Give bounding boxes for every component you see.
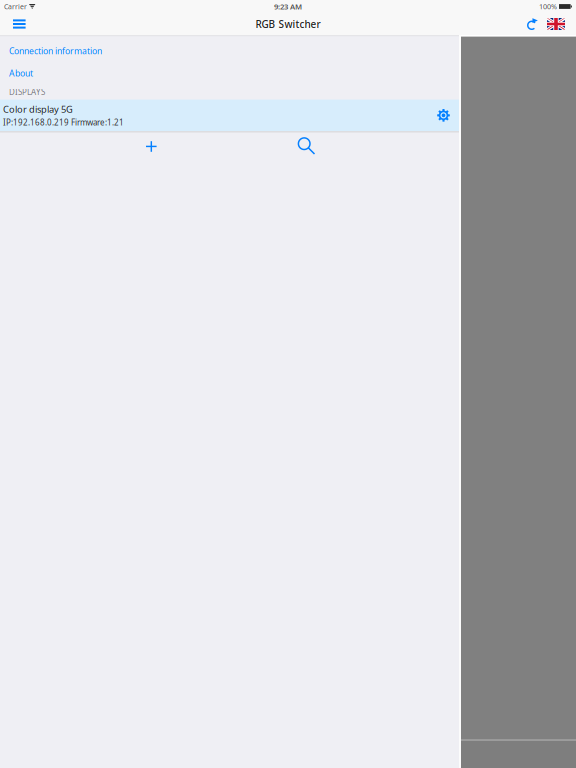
staticText: Carrier: [4, 2, 27, 11]
button[interactable]: Connection information: [0, 40, 459, 62]
staticText: Connection information: [9, 45, 102, 57]
staticText: Color display 5G: [3, 103, 73, 115]
staticText: RGB Switcher: [255, 17, 320, 31]
staticText: DISPLAYS: [9, 87, 45, 97]
staticText: 100%: [539, 2, 557, 11]
button[interactable]: Add: [129, 133, 173, 159]
staticText: 9:23 AM: [274, 1, 302, 12]
button[interactable]: Refresh: [519, 13, 547, 35]
staticText: IP:192.168.0.219 Firmware:1.21: [3, 117, 124, 128]
staticText: About: [9, 67, 33, 79]
button[interactable]: Language: [547, 13, 576, 35]
button[interactable]: Search: [285, 133, 329, 159]
button[interactable]: Color display 5G: [0, 100, 459, 131]
button[interactable]: Menu: [0, 13, 34, 35]
button[interactable]: About: [0, 62, 459, 84]
